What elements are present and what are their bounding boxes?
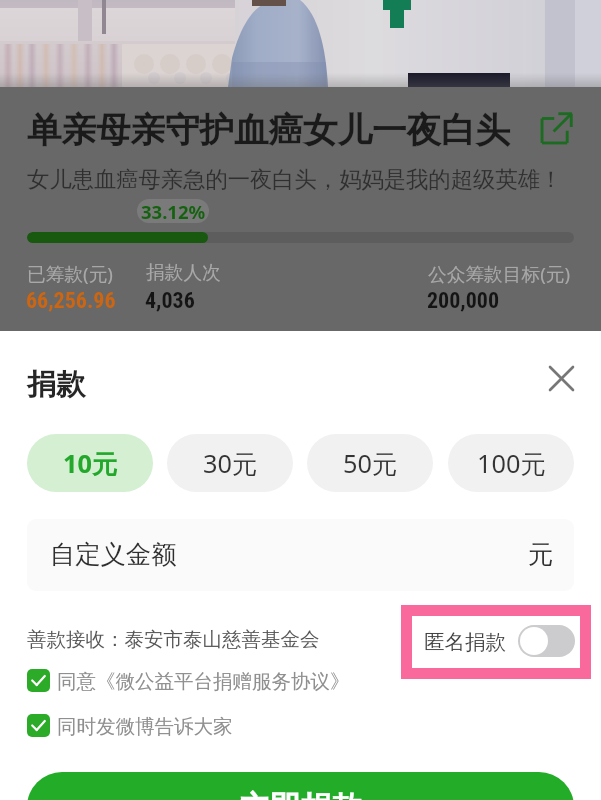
- staticText: 单亲母亲守护血癌女儿一夜白头: [27, 109, 510, 152]
- staticText: 女儿患血癌母亲急的一夜白头，妈妈是我的超级英雄！: [27, 166, 563, 194]
- button[interactable]: 100元: [448, 434, 574, 492]
- button[interactable]: Open link: [538, 109, 576, 147]
- staticText: 立即捐款: [239, 788, 363, 800]
- button[interactable]: 立即捐款: [27, 772, 574, 800]
- staticText: 匿名捐款: [424, 629, 506, 655]
- staticText: 公众筹款目标(元): [428, 261, 571, 287]
- button[interactable]: Anonymous donation toggle: [412, 616, 580, 668]
- staticText: 30元: [203, 446, 258, 481]
- button[interactable]: 同意《微公益平台捐赠服务协议》: [27, 669, 350, 692]
- staticText: 元: [528, 539, 554, 571]
- staticText: 捐款: [27, 366, 85, 403]
- staticText: 同时发微博告诉大家: [57, 714, 233, 737]
- staticText: 4,036: [145, 288, 195, 314]
- staticText: 50元: [343, 446, 398, 481]
- staticText: 10元: [63, 446, 118, 481]
- staticText: 已筹款(元): [27, 261, 113, 287]
- staticText: 33.12%: [141, 199, 206, 223]
- button[interactable]: 30元: [167, 434, 293, 492]
- staticText: 善款接收：泰安市泰山慈善基金会: [27, 627, 320, 652]
- button[interactable]: 同时发微博告诉大家: [27, 714, 233, 737]
- staticText: 自定义金额: [50, 539, 177, 571]
- button[interactable]: 自定义金额: [27, 519, 574, 591]
- button[interactable]: Close: [543, 360, 579, 396]
- staticText: 66,256.96: [26, 288, 116, 314]
- button[interactable]: 50元: [307, 434, 433, 492]
- staticText: 捐款人次: [146, 261, 221, 285]
- staticText: 100元: [477, 446, 546, 481]
- button[interactable]: 10元: [27, 434, 153, 492]
- staticText: 同意《微公益平台捐赠服务协议》: [57, 669, 350, 692]
- staticText: 200,000: [427, 288, 500, 314]
